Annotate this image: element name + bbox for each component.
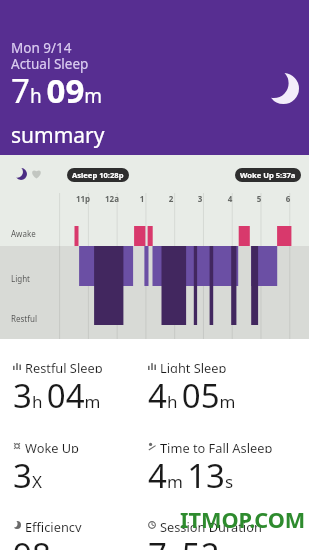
staticText: Efficiency [25, 518, 82, 532]
button[interactable]: Light Sleep [148, 359, 293, 418]
button[interactable]: Efficiency [13, 518, 158, 550]
button[interactable]: Heart rate [31, 168, 42, 179]
staticText: ITMOP.COM [180, 505, 306, 535]
button[interactable]: Woke Up 5:37a [235, 168, 301, 182]
staticText: 6 [276, 193, 300, 204]
staticText: 3X [13, 453, 42, 498]
staticText: Time to Fall Asleep [160, 439, 273, 453]
staticText: 3 [188, 193, 212, 204]
staticText: 4h 05m [148, 373, 236, 418]
staticText: Woke Up [25, 439, 79, 453]
staticText: Light [11, 273, 31, 284]
staticText: 7h 52m [148, 532, 236, 550]
staticText: 4 [218, 193, 242, 204]
button[interactable]: Restful Sleep [13, 359, 158, 418]
staticText: 11p [71, 193, 95, 204]
staticText: 3h 04m [13, 373, 101, 418]
staticText: 7h 09m [11, 68, 103, 113]
button[interactable]: Sleep [15, 168, 27, 180]
staticText: Mon 9/14 [11, 39, 72, 57]
staticText: summary [11, 121, 105, 150]
staticText: Woke Up 5:37a [240, 170, 296, 180]
staticText: 5 [247, 193, 271, 204]
button[interactable]: Night [268, 73, 299, 104]
button[interactable]: Asleep 10:28p [67, 168, 129, 182]
staticText: 12a [100, 193, 124, 204]
staticText: Restful Sleep [25, 359, 103, 373]
button[interactable]: Woke Up [13, 439, 158, 498]
staticText: Awake [11, 228, 36, 239]
staticText: 4m 13s [148, 453, 234, 498]
staticText: 2 [159, 193, 183, 204]
staticText: Actual Sleep [11, 55, 89, 73]
staticText: 98% [13, 532, 65, 550]
staticText: 1 [130, 193, 154, 204]
staticText: Light Sleep [160, 359, 227, 373]
staticText: Restful [11, 313, 37, 324]
button[interactable]: Time to Fall Asleep [148, 439, 293, 498]
staticText: Session Duration [160, 518, 262, 532]
staticText: Asleep 10:28p [72, 170, 124, 180]
button[interactable]: Session Duration [148, 518, 293, 550]
